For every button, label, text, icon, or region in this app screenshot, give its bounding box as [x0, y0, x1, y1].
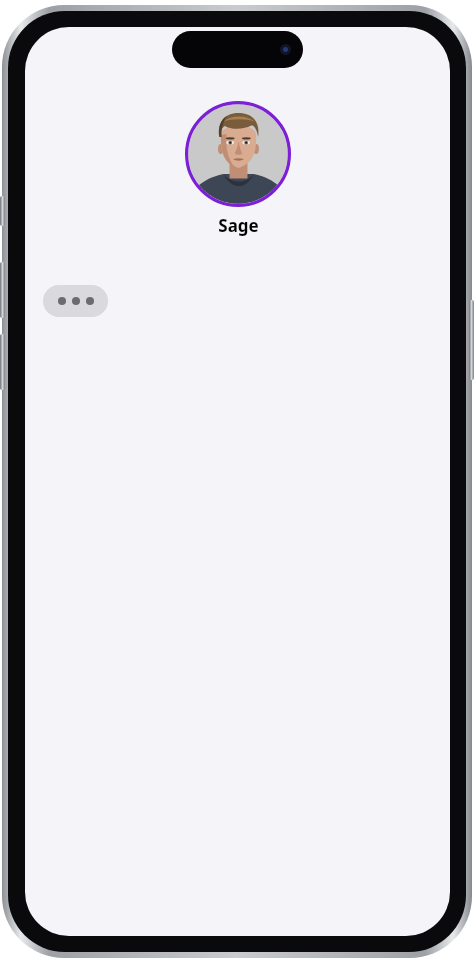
- button[interactable]: Typing indicator: [43, 285, 108, 317]
- button[interactable]: Sage profile photo: [185, 101, 291, 207]
- staticText: Sage: [218, 214, 259, 237]
- button[interactable]: Sage profile photo: [185, 101, 291, 237]
